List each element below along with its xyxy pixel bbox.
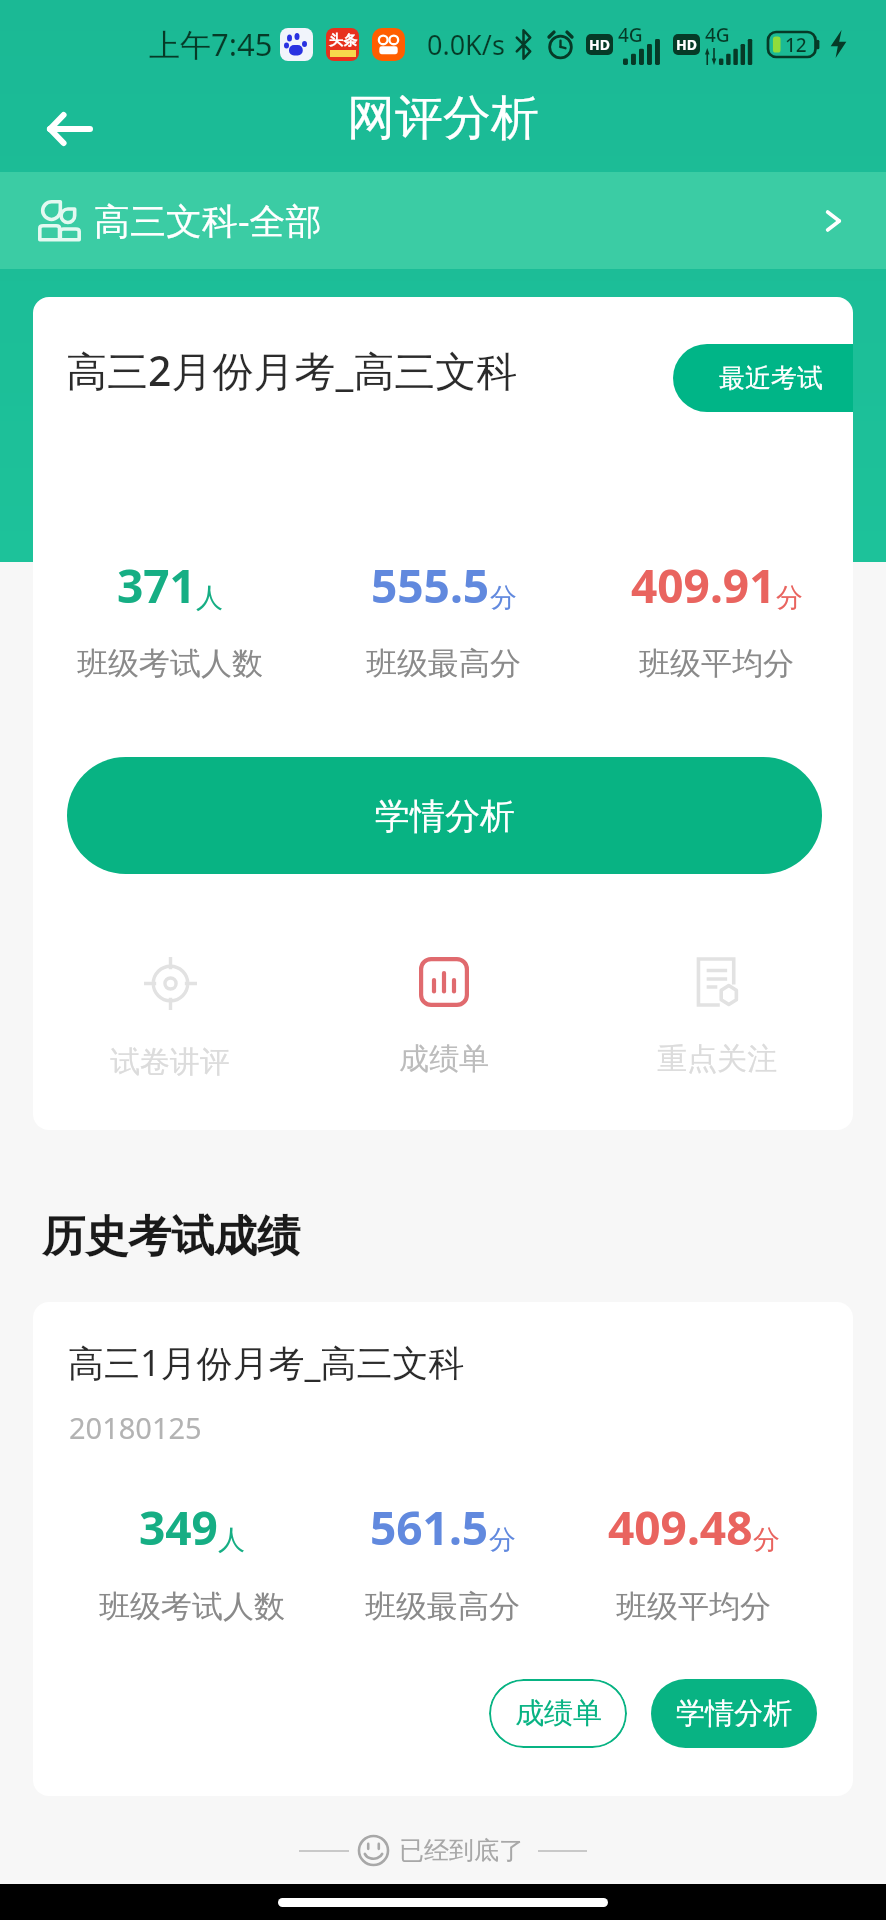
staticText: 最近考试 xyxy=(719,362,823,395)
staticText: 班级考试人数 xyxy=(99,1587,285,1626)
button[interactable]: 最近考试 xyxy=(673,344,853,412)
staticText: 409.91 xyxy=(631,554,776,617)
staticText: 班级最高分 xyxy=(365,1587,520,1626)
staticText: 学情分析 xyxy=(676,1695,792,1732)
staticText: 分 xyxy=(489,1523,516,1557)
staticText: 网评分析 xyxy=(347,88,539,148)
staticText: 12 xyxy=(785,32,807,58)
staticText: 头条 xyxy=(329,32,357,50)
staticText: 班级平均分 xyxy=(616,1587,771,1626)
staticText: 分 xyxy=(490,581,517,615)
staticText: 人 xyxy=(196,581,223,615)
staticText: 已经到底了 xyxy=(399,1835,524,1866)
staticText: 高三2月份月考_高三文科 xyxy=(66,342,518,398)
staticText: 4G xyxy=(618,22,643,48)
staticText: 成绩单 xyxy=(515,1695,602,1732)
staticText: 409.48 xyxy=(608,1496,753,1559)
staticText: 4G xyxy=(705,22,730,48)
button[interactable]: 成绩单 xyxy=(489,1679,627,1748)
staticText: 班级考试人数 xyxy=(77,644,263,683)
staticText: 人 xyxy=(218,1523,245,1557)
staticText: 561.5 xyxy=(370,1496,489,1559)
staticText: 20180125 xyxy=(69,1408,202,1447)
button[interactable]: 重点关注 xyxy=(580,957,853,1078)
staticText: 371 xyxy=(117,554,196,617)
staticText: 班级平均分 xyxy=(639,644,794,683)
staticText: 学情分析 xyxy=(375,794,515,838)
staticText: HD xyxy=(589,35,610,54)
staticText: 重点关注 xyxy=(657,1040,777,1078)
staticText: 历史考试成绩 xyxy=(42,1210,300,1264)
staticText: 0.0K/s xyxy=(427,26,505,63)
staticText: 555.5 xyxy=(371,554,490,617)
staticText: 班级最高分 xyxy=(366,644,521,683)
button[interactable]: 成绩单 xyxy=(307,957,580,1078)
staticText: 试卷讲评 xyxy=(110,1043,230,1081)
button[interactable]: 高三文科-全部 xyxy=(0,172,886,269)
staticText: HD xyxy=(676,35,697,54)
button[interactable]: 试卷讲评 xyxy=(33,957,307,1081)
staticText: 分 xyxy=(776,581,803,615)
staticText: 上午7:45 xyxy=(149,23,273,65)
button[interactable]: 学情分析 xyxy=(651,1679,817,1748)
button[interactable]: Back xyxy=(34,93,106,165)
staticText: 成绩单 xyxy=(399,1040,489,1078)
staticText: 高三1月份月考_高三文科 xyxy=(68,1338,465,1387)
staticText: 高三文科-全部 xyxy=(94,196,322,245)
button[interactable]: 学情分析 xyxy=(67,757,822,874)
staticText: 349 xyxy=(139,1496,218,1559)
staticText: 分 xyxy=(753,1523,780,1557)
